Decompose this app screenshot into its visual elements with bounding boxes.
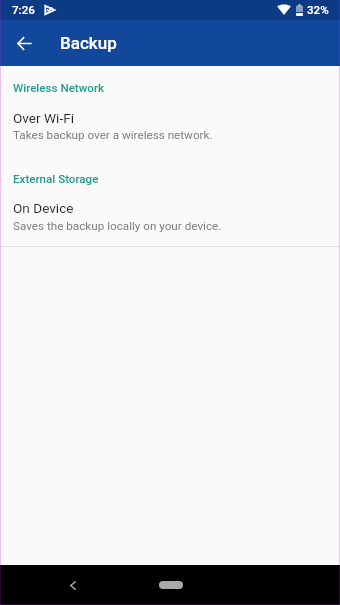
staticText: 7:26: [12, 3, 35, 17]
staticText: 32%: [307, 3, 329, 17]
staticText: On Device: [13, 200, 74, 216]
staticText: Backup: [60, 33, 117, 53]
button[interactable]: Back: [59, 571, 87, 599]
button[interactable]: Navigate up: [6, 25, 42, 61]
staticText: Wireless Network: [13, 81, 105, 95]
staticText: Over Wi-Fi: [13, 110, 74, 126]
staticText: Saves the backup locally on your device.: [13, 219, 222, 233]
button[interactable]: On Device: [0, 194, 340, 236]
button[interactable]: Over Wi-Fi: [0, 104, 340, 146]
button[interactable]: Home: [159, 581, 183, 589]
staticText: Takes backup over a wireless network.: [13, 128, 213, 142]
staticText: External Storage: [13, 172, 99, 186]
